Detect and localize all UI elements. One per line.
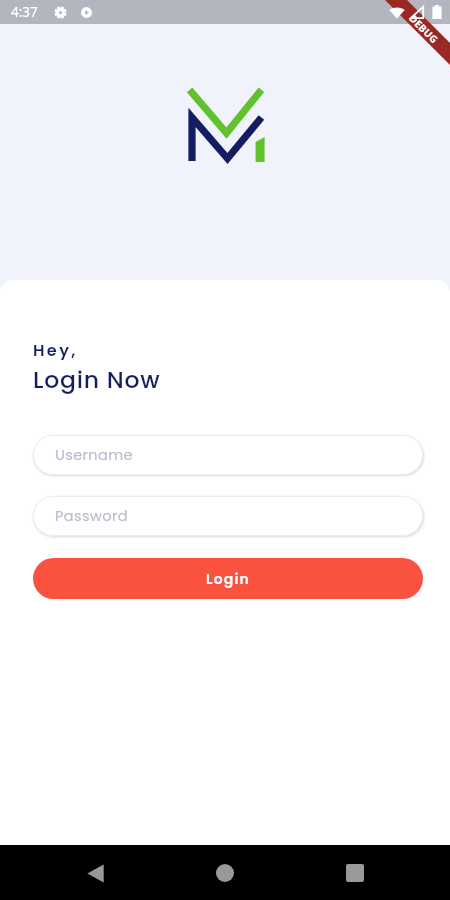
button[interactable]: Home — [201, 849, 249, 897]
button[interactable]: Recent apps — [331, 849, 379, 897]
staticText: Login — [206, 569, 250, 589]
button[interactable]: Password — [33, 496, 423, 536]
button[interactable]: Login — [33, 558, 423, 599]
staticText: DEBUG — [406, 11, 442, 47]
button[interactable]: Back — [71, 849, 119, 897]
staticText: Hey, — [33, 339, 78, 361]
staticText: Login Now — [33, 363, 161, 396]
staticText: Username — [55, 445, 133, 465]
button[interactable]: Username — [33, 435, 423, 475]
staticText: 4:37 — [11, 3, 38, 21]
staticText: Password — [55, 506, 128, 526]
